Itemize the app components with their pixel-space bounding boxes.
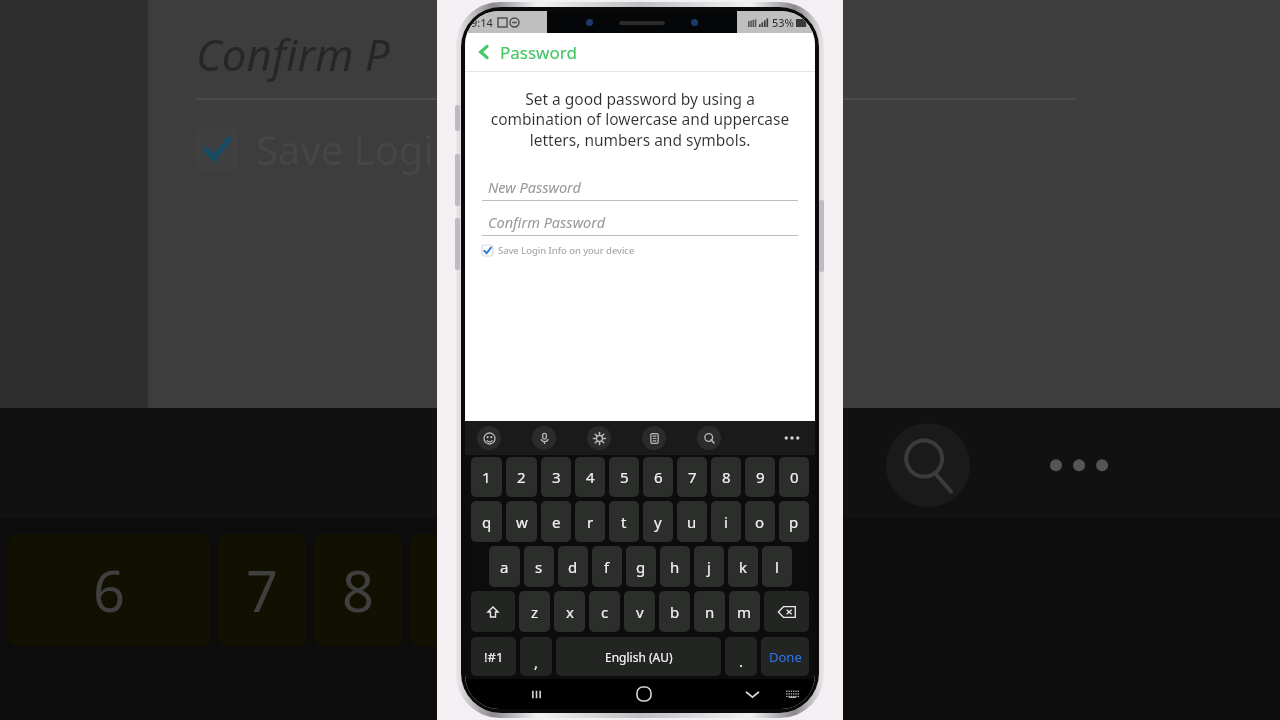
button[interactable]: r <box>575 501 605 542</box>
staticText: 7 <box>246 552 279 628</box>
button[interactable]: Backspace <box>764 591 809 632</box>
button[interactable]: q <box>471 501 502 542</box>
button[interactable]: h <box>660 546 690 587</box>
button[interactable]: More options <box>777 421 807 455</box>
staticText: z <box>531 602 539 622</box>
button[interactable]: Save Login Info on your device <box>482 242 635 259</box>
staticText: 8 <box>342 552 375 628</box>
button[interactable]: y <box>643 501 673 542</box>
staticText: 9:14 <box>471 15 493 30</box>
staticText: r <box>587 512 594 532</box>
button[interactable]: !#1 <box>471 637 516 676</box>
button[interactable]: 2 <box>506 457 537 497</box>
button[interactable]: Recents <box>519 679 553 709</box>
staticText: Save Login I <box>256 122 483 176</box>
button[interactable]: b <box>659 591 690 632</box>
button[interactable]: Back <box>465 33 815 71</box>
button[interactable]: English (AU) <box>556 637 721 676</box>
button[interactable]: Keyboard settings <box>587 426 611 450</box>
button[interactable]: , <box>520 637 552 676</box>
staticText: i <box>724 512 728 532</box>
button[interactable]: z <box>519 591 550 632</box>
staticText: u <box>687 512 697 532</box>
button[interactable]: u <box>677 501 707 542</box>
button[interactable]: j <box>694 546 724 587</box>
button[interactable]: Keyboard <box>775 679 809 709</box>
button[interactable]: t <box>609 501 639 542</box>
staticText: 0 <box>790 467 799 487</box>
staticText: o <box>755 512 765 532</box>
staticText: Confirm P <box>196 24 390 84</box>
staticText: v <box>636 602 644 622</box>
staticText: English (AU) <box>605 649 673 665</box>
button[interactable]: 4 <box>575 457 605 497</box>
button[interactable]: n <box>694 591 725 632</box>
button[interactable]: k <box>728 546 758 587</box>
staticText: 9 <box>438 552 471 628</box>
staticText: 2 <box>517 467 526 487</box>
staticText: p <box>789 512 799 532</box>
button[interactable]: Confirm Password <box>482 208 798 236</box>
staticText: 53% <box>772 15 794 30</box>
staticText: Set a good password by using a combinati… <box>482 88 798 151</box>
staticText: Save Login Info on your device <box>498 244 635 257</box>
button[interactable]: Voice input <box>532 426 556 450</box>
button[interactable]: o <box>745 501 775 542</box>
button[interactable]: Home <box>627 679 661 709</box>
button[interactable]: v <box>624 591 655 632</box>
button[interactable]: a <box>489 546 520 587</box>
button[interactable]: New Password <box>482 173 798 201</box>
staticText: q <box>482 512 492 532</box>
staticText: !#1 <box>484 648 504 666</box>
button[interactable]: . <box>725 637 757 676</box>
staticText: y <box>654 512 662 532</box>
staticText: 4 <box>586 467 595 487</box>
staticText: s <box>535 557 543 577</box>
staticText: b <box>670 602 680 622</box>
staticText: , <box>534 652 539 672</box>
button[interactable]: 3 <box>541 457 571 497</box>
staticText: 0 <box>534 552 567 628</box>
button[interactable]: s <box>524 546 554 587</box>
button[interactable]: 5 <box>609 457 639 497</box>
button[interactable]: Shift <box>471 591 515 632</box>
button[interactable]: Done <box>761 637 809 676</box>
staticText: Confirm Password <box>488 212 606 232</box>
button[interactable]: 8 <box>711 457 741 497</box>
staticText: j <box>707 557 711 577</box>
button[interactable]: p <box>779 501 809 542</box>
button[interactable]: Hide keyboard <box>735 679 769 709</box>
button[interactable]: 9 <box>745 457 775 497</box>
button[interactable]: d <box>558 546 588 587</box>
button[interactable]: 7 <box>677 457 707 497</box>
staticText: 8 <box>722 467 731 487</box>
button[interactable]: f <box>592 546 622 587</box>
staticText: 5 <box>620 467 629 487</box>
button[interactable]: x <box>554 591 585 632</box>
staticText: d <box>568 557 578 577</box>
staticText: w <box>516 512 528 532</box>
button[interactable]: l <box>762 546 792 587</box>
button[interactable]: 6 <box>643 457 673 497</box>
button[interactable]: w <box>506 501 537 542</box>
button[interactable]: m <box>729 591 760 632</box>
other: Back <box>477 45 491 59</box>
button[interactable]: c <box>589 591 620 632</box>
staticText: f <box>604 557 610 577</box>
staticText: a <box>500 557 509 577</box>
staticText: g <box>636 557 646 577</box>
button[interactable]: 1 <box>471 457 502 497</box>
button[interactable]: 0 <box>779 457 809 497</box>
staticText: Password <box>500 41 577 64</box>
staticText: l <box>775 557 779 577</box>
button[interactable]: Emoji <box>477 426 501 450</box>
staticText: k <box>739 557 748 577</box>
staticText: c <box>601 602 609 622</box>
button[interactable]: Search <box>697 426 721 450</box>
button[interactable]: e <box>541 501 571 542</box>
button[interactable]: Clipboard <box>642 426 666 450</box>
staticText: 1 <box>482 467 491 487</box>
button[interactable]: g <box>626 546 656 587</box>
staticText: Done <box>769 648 802 666</box>
button[interactable]: i <box>711 501 741 542</box>
